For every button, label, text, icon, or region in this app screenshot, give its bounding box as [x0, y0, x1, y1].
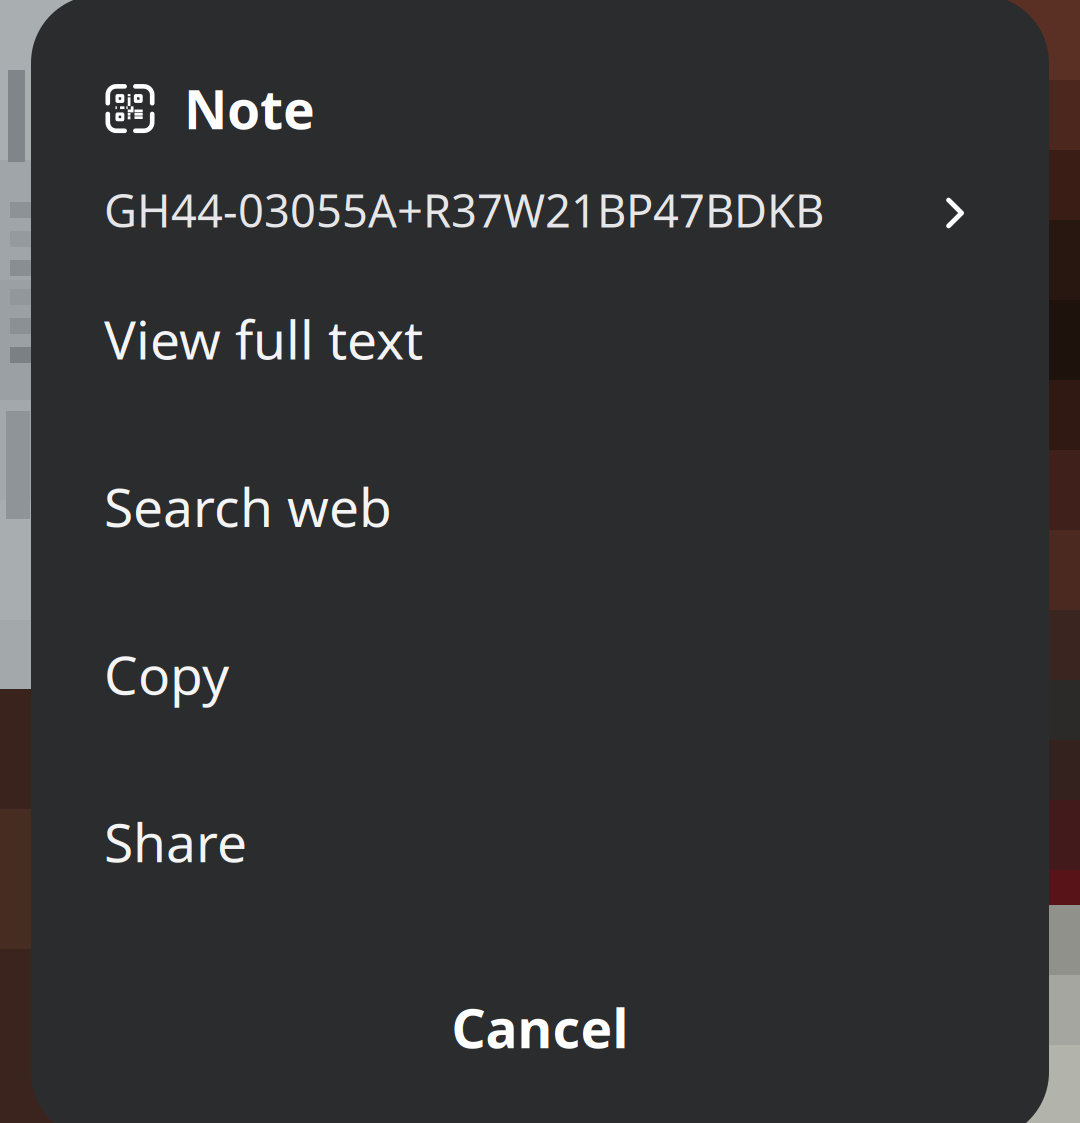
- staticText: Note: [184, 73, 315, 144]
- staticText: GH44-03055A+R37W21BP47BDKB: [104, 180, 824, 240]
- button[interactable]: Copy: [31, 590, 1049, 758]
- button[interactable]: Cancel: [31, 965, 1049, 1090]
- staticText: View full text: [104, 303, 423, 374]
- staticText: Share: [104, 806, 247, 877]
- staticText: Copy: [104, 639, 229, 709]
- button[interactable]: Share: [31, 758, 1049, 925]
- button[interactable]: Search web: [31, 423, 1049, 590]
- button[interactable]: View full text: [31, 255, 1049, 423]
- button[interactable]: Scanned code GH44-03055A+R37W21BP47BDKB: [31, 144, 1049, 262]
- staticText: Cancel: [451, 992, 628, 1063]
- staticText: Search web: [104, 471, 392, 542]
